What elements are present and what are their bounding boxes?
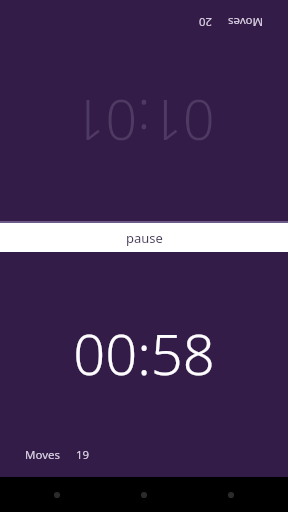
button[interactable]: Back (27, 477, 87, 512)
staticText: 00:58 (73, 315, 215, 391)
button[interactable]: Home (114, 477, 174, 512)
staticText: Moves (25, 447, 60, 463)
button[interactable]: 01:01 (0, 0, 288, 221)
staticText: Moves (228, 14, 263, 30)
button[interactable]: pause (0, 223, 288, 252)
staticText: 01:01 (73, 84, 215, 160)
staticText: 20 (198, 14, 212, 30)
button[interactable]: 00:58 (0, 252, 288, 477)
staticText: pause (126, 229, 163, 247)
staticText: 19 (76, 447, 90, 463)
button[interactable]: Recent apps (201, 477, 261, 512)
